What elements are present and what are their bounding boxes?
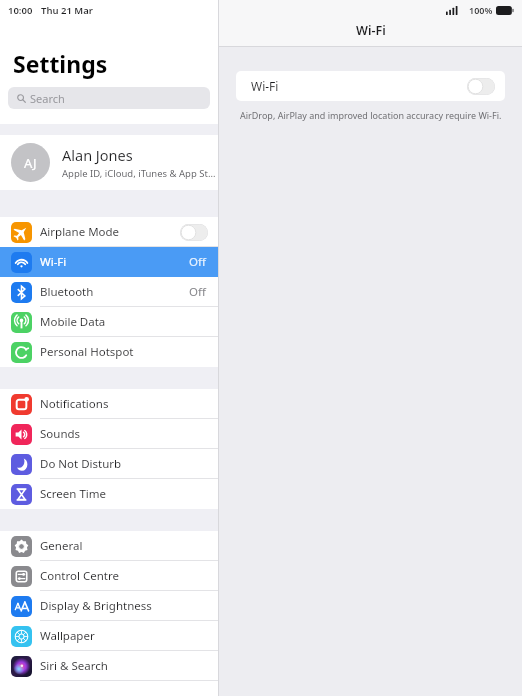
button[interactable]: Mobile Data (0, 307, 218, 337)
staticText: Apple ID, iCloud, iTunes & App St… (62, 167, 216, 180)
staticText: Wi-Fi (251, 78, 279, 94)
button[interactable]: Wi-Fi (0, 247, 218, 277)
button[interactable]: Control Centre (0, 561, 218, 591)
staticText: Thu 21 Mar (41, 4, 93, 17)
button[interactable]: Siri & Search (0, 651, 218, 681)
button[interactable]: Sounds (0, 419, 218, 449)
staticText: AirDrop, AirPlay and improved location a… (240, 109, 502, 121)
staticText: General (40, 538, 83, 554)
staticText: 100% (469, 4, 493, 16)
staticText: Bluetooth (40, 284, 94, 300)
button[interactable]: Display & Brightness (0, 591, 218, 621)
button[interactable]: Wi-Fi (236, 71, 505, 101)
button[interactable]: Bluetooth (0, 277, 218, 307)
button[interactable]: Toggle (180, 224, 208, 241)
staticText: Airplane Mode (40, 224, 120, 240)
staticText: Siri & Search (40, 658, 108, 674)
button[interactable]: AJ (0, 135, 218, 190)
staticText: 10:00 (8, 4, 33, 17)
button[interactable]: Screen Time (0, 479, 218, 509)
staticText: Mobile Data (40, 314, 106, 330)
staticText: Sounds (40, 426, 81, 442)
button[interactable]: Search (8, 87, 210, 109)
staticText: Off (189, 254, 206, 270)
staticText: Wi-Fi (356, 22, 386, 39)
staticText: Wallpaper (40, 628, 95, 644)
staticText: Alan Jones (62, 145, 133, 165)
button[interactable]: General (0, 531, 218, 561)
button[interactable]: Wallpaper (0, 621, 218, 651)
staticText: Settings (13, 48, 108, 79)
staticText: Display & Brightness (40, 598, 152, 614)
staticText: Notifications (40, 396, 109, 412)
staticText: Wi-Fi (40, 254, 67, 270)
button[interactable]: Personal Hotspot (0, 337, 218, 367)
button[interactable]: Airplane Mode (0, 217, 218, 247)
button[interactable]: Toggle (467, 78, 495, 95)
staticText: Screen Time (40, 486, 107, 502)
staticText: Search (30, 91, 65, 106)
staticText: AJ (24, 154, 37, 172)
staticText: Off (189, 284, 206, 300)
staticText: Do Not Disturb (40, 456, 122, 472)
button[interactable]: Notifications (0, 389, 218, 419)
button[interactable]: Do Not Disturb (0, 449, 218, 479)
staticText: Personal Hotspot (40, 344, 134, 360)
staticText: Control Centre (40, 568, 119, 584)
